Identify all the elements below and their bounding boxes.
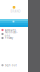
staticText: Account [5,28,16,32]
staticText: Notifications [5,30,18,38]
staticText: Sign out [5,63,17,67]
staticText: BRAND [10,10,20,13]
staticText: Privacy [5,36,13,40]
